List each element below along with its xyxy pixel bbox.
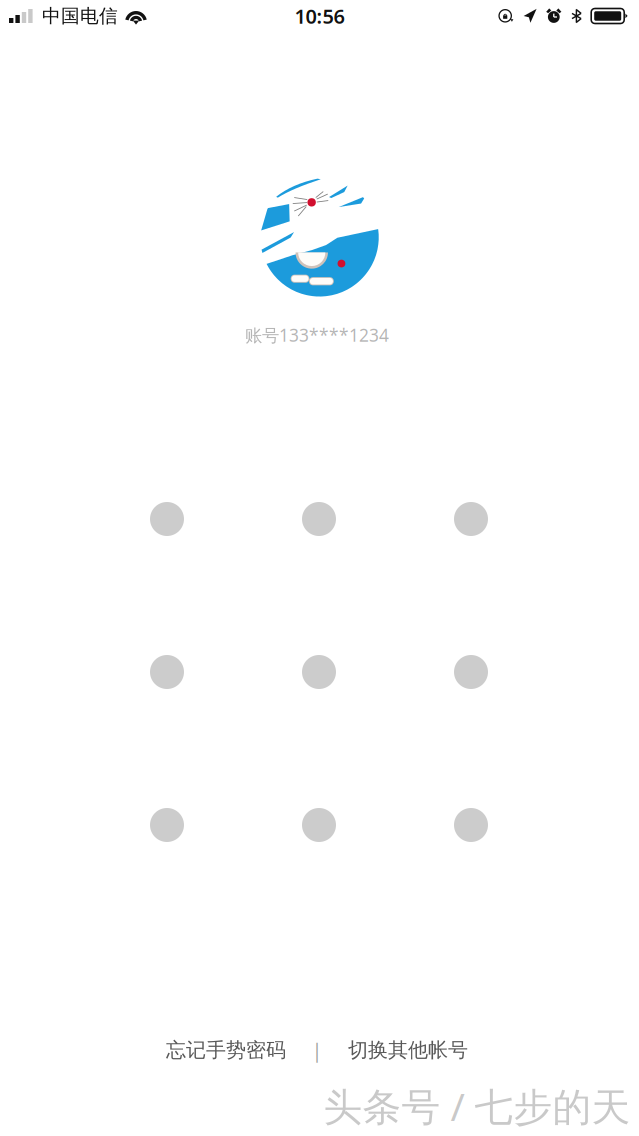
button[interactable]: Pattern node <box>454 655 488 689</box>
button[interactable]: Pattern node <box>150 502 184 536</box>
button[interactable]: Pattern node <box>150 655 184 689</box>
staticText: 头条号 / 七步的天 <box>323 1080 630 1132</box>
staticText: 账号133****1234 <box>245 323 389 346</box>
button[interactable]: 忘记手势密码 <box>161 1030 291 1070</box>
button[interactable]: Pattern node <box>302 808 336 842</box>
button[interactable]: Pattern node <box>454 808 488 842</box>
staticText: 10:56 <box>294 3 344 29</box>
staticText: 中国电信 <box>42 4 118 27</box>
staticText: 切换其他帐号 <box>348 1038 468 1062</box>
button[interactable]: 切换其他帐号 <box>343 1030 473 1070</box>
button[interactable]: Pattern node <box>302 502 336 536</box>
button[interactable]: Pattern node <box>302 655 336 689</box>
button[interactable]: Pattern node <box>150 808 184 842</box>
staticText: 忘记手势密码 <box>166 1038 286 1062</box>
button[interactable]: Pattern node <box>454 502 488 536</box>
staticText: | <box>311 1037 322 1063</box>
